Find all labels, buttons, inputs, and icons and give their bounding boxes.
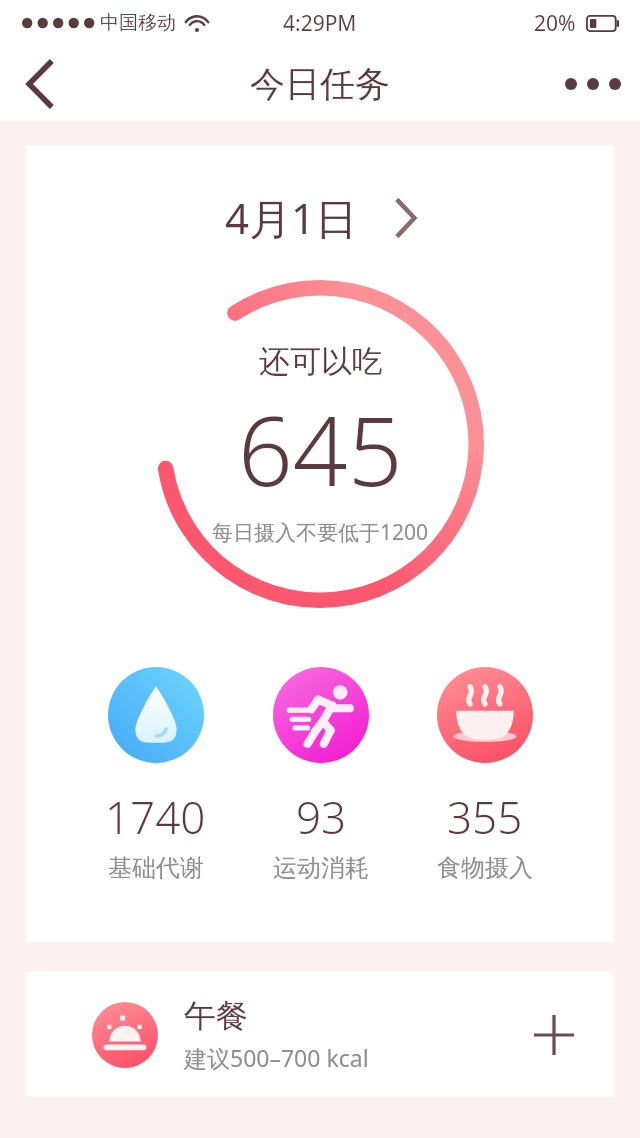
staticText: 运动消耗 xyxy=(273,853,369,883)
staticText: 1740 xyxy=(105,787,206,847)
button[interactable]: 93 xyxy=(261,665,381,883)
button[interactable]: 午餐 xyxy=(26,972,614,1097)
staticText: 20% xyxy=(534,9,576,38)
button[interactable]: More options xyxy=(558,54,628,114)
staticText: 355 xyxy=(447,787,523,847)
button[interactable]: Back xyxy=(8,52,72,116)
staticText: 建议500–700 kcal xyxy=(184,1042,369,1073)
button[interactable]: 355 xyxy=(425,665,545,883)
staticText: 645 xyxy=(238,383,403,514)
staticText: 4:29PM xyxy=(283,9,357,38)
button[interactable]: Add lunch xyxy=(524,1005,584,1065)
staticText: 还可以吃 xyxy=(259,342,383,381)
staticText: 93 xyxy=(296,787,347,847)
staticText: 午餐 xyxy=(184,996,248,1036)
button[interactable]: 4月1日 xyxy=(213,183,428,252)
staticText: 4月1日 xyxy=(225,189,358,246)
staticText: 每日摄入不要低于1200 xyxy=(212,518,429,547)
button[interactable]: 1740 xyxy=(95,665,216,883)
staticText: 基础代谢 xyxy=(108,853,204,883)
staticText: 食物摄入 xyxy=(437,853,533,883)
staticText: 今日任务 xyxy=(250,62,390,106)
staticText: 中国移动 xyxy=(100,11,176,35)
